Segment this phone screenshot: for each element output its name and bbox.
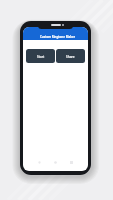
button[interactable]: Back [37,160,42,165]
button[interactable]: Recent apps [69,160,74,165]
staticText: Start [37,55,45,59]
button[interactable]: Home [53,160,58,165]
button[interactable]: Start [26,49,55,63]
staticText: Custom Ringtone Maker [40,35,75,39]
button[interactable]: Share [56,49,85,63]
staticText: Share [66,55,75,59]
button[interactable]: Custom Ringtone Maker [23,27,88,40]
